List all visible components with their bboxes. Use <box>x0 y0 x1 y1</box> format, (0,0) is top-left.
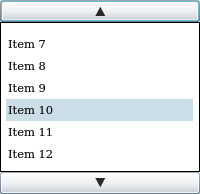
staticText: Item 9 <box>8 81 46 94</box>
button[interactable]: Item 9 <box>6 77 193 99</box>
staticText: Item 11 <box>8 125 54 138</box>
button[interactable]: Item 7 <box>6 33 193 55</box>
button[interactable]: Scroll up <box>0 0 200 22</box>
button[interactable]: Item 11 <box>6 121 193 143</box>
staticText: Item 7 <box>8 37 46 50</box>
button[interactable]: Item 12 <box>6 143 193 165</box>
button[interactable]: Item 10 <box>6 99 193 121</box>
staticText: Item 10 <box>8 103 54 116</box>
button[interactable]: Scroll down <box>0 172 200 194</box>
staticText: Item 9 <box>8 81 46 94</box>
staticText: Item 10 <box>8 103 54 116</box>
staticText: Item 11 <box>8 125 54 138</box>
button[interactable]: Item 8 <box>6 55 193 77</box>
staticText: Item 7 <box>8 37 46 50</box>
staticText: Item 8 <box>8 59 46 72</box>
staticText: Item 12 <box>8 147 54 160</box>
staticText: Item 12 <box>8 147 54 160</box>
staticText: Item 8 <box>8 59 46 72</box>
